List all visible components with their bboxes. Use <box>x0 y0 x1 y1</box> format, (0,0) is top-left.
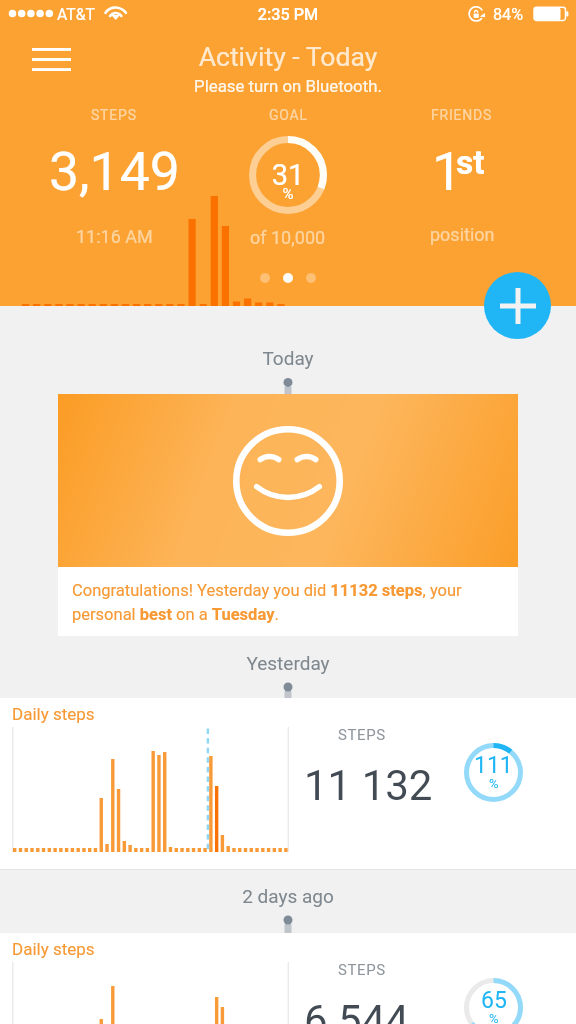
staticText: STEPS <box>91 107 137 123</box>
button[interactable]: Add activity <box>484 272 551 339</box>
staticText: % <box>249 185 327 203</box>
staticText: STEPS <box>338 726 386 744</box>
staticText: 11 132 <box>304 761 433 810</box>
staticText: position <box>430 224 495 245</box>
staticText: Daily steps <box>12 939 95 959</box>
staticText: FRIENDS <box>431 107 493 123</box>
staticText: 2 days ago <box>0 885 576 907</box>
staticText: Please turn on Bluetooth. <box>0 76 576 96</box>
staticText: 2:35 PM <box>0 5 576 24</box>
staticText: 11:16 AM <box>76 226 153 247</box>
staticText: Congratulations! Yesterday you did 11132… <box>72 581 504 624</box>
staticText: 111 <box>474 752 513 779</box>
staticText: Today <box>0 347 576 369</box>
staticText: % <box>489 776 499 791</box>
staticText: % <box>489 1011 499 1024</box>
staticText: AT&T <box>57 5 95 24</box>
staticText: 6 544 <box>304 996 409 1024</box>
staticText: 31 <box>249 158 327 192</box>
staticText: 1 <box>432 140 463 203</box>
staticText: of 10,000 <box>250 227 326 248</box>
staticText: Yesterday <box>0 652 576 674</box>
staticText: Daily steps <box>12 704 95 724</box>
button[interactable]: Daily steps <box>0 933 576 1024</box>
staticText: 65 <box>481 987 507 1014</box>
button[interactable]: Open navigation menu <box>16 33 86 85</box>
button[interactable] <box>58 394 518 567</box>
staticText: 3,149 <box>49 140 180 203</box>
button[interactable]: Daily steps <box>0 698 576 870</box>
staticText: STEPS <box>338 961 386 979</box>
staticText: GOAL <box>269 107 308 123</box>
staticText: st <box>456 143 485 182</box>
staticText: 84% <box>493 5 524 24</box>
staticText: Activity - Today <box>0 41 576 72</box>
